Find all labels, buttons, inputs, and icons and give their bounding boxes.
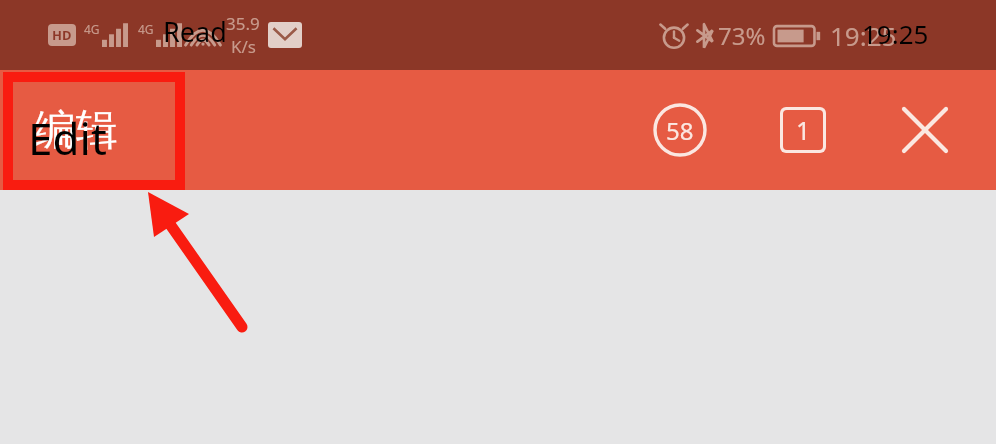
staticText: 4G bbox=[138, 21, 154, 37]
staticText: 编辑 bbox=[34, 104, 118, 157]
staticText: HD bbox=[52, 26, 72, 44]
staticText: 58 bbox=[666, 114, 694, 147]
staticText: 35.9 bbox=[226, 12, 260, 35]
button[interactable]: 编辑 bbox=[34, 104, 118, 157]
button[interactable]: Close bbox=[894, 99, 956, 161]
staticText: Edit bbox=[28, 108, 107, 168]
button[interactable]: 1 bbox=[772, 99, 834, 161]
staticText: 19:25 bbox=[830, 18, 897, 53]
staticText: 73% bbox=[718, 19, 766, 52]
staticText: Read bbox=[163, 13, 227, 50]
staticText: 1 bbox=[796, 113, 811, 147]
staticText: K/s bbox=[231, 35, 256, 58]
staticText: 4G bbox=[84, 21, 100, 37]
staticText: 19:25 bbox=[862, 16, 929, 51]
button[interactable]: 58 bbox=[649, 99, 711, 161]
